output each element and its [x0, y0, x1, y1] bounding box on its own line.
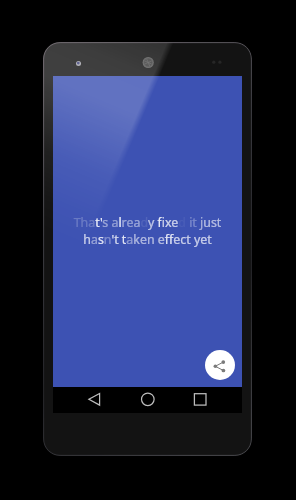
staticText: That's already fixed it just hasn't take… [71, 214, 224, 248]
button[interactable]: Share [205, 350, 235, 380]
